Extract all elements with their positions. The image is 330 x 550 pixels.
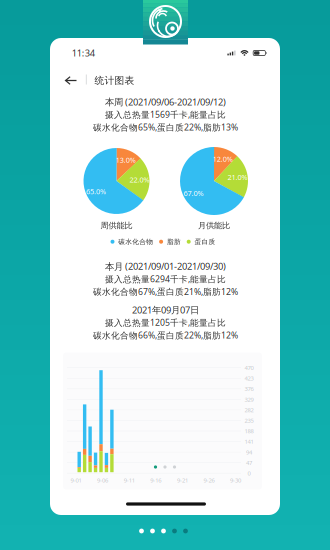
staticText: 摄入总热量1569千卡,能量占比 <box>105 109 226 120</box>
staticText: 9-21 <box>177 476 188 484</box>
staticText: 9-26 <box>203 476 214 484</box>
staticText: 蛋白质 <box>194 237 215 246</box>
staticText: 9-30 <box>230 476 241 484</box>
staticText: 141 <box>244 438 253 446</box>
staticText: 9-11 <box>124 476 135 484</box>
staticText: 11:34 <box>72 47 95 59</box>
staticText: 12.0% <box>213 154 233 164</box>
staticText: 0 <box>247 469 250 477</box>
staticText: 脂肪 <box>167 237 181 246</box>
staticText: 碳水化合物 <box>118 237 153 246</box>
staticText: 21.0% <box>227 172 247 182</box>
staticText: 329 <box>244 395 253 403</box>
staticText: 235 <box>244 416 253 424</box>
staticText: 65.0% <box>86 186 106 196</box>
staticText: 47 <box>246 459 252 467</box>
staticText: 282 <box>244 406 253 414</box>
staticText: 470 <box>244 364 253 372</box>
staticText: 22.0% <box>130 175 150 185</box>
staticText: 碳水化合物65%,蛋白质22%,脂肪13% <box>93 121 238 133</box>
staticText: 摄入总热量6294千卡,能量占比 <box>105 273 226 285</box>
staticText: 9-06 <box>97 476 108 484</box>
staticText: 碳水化合物66%,蛋白质22%,脂肪12% <box>93 329 238 341</box>
staticText: 月供能比 <box>198 220 230 231</box>
staticText: 9-16 <box>150 476 161 484</box>
staticText: 9-01 <box>70 476 81 484</box>
staticText: 2021年09月07日 <box>132 303 199 316</box>
staticText: 94 <box>246 448 252 456</box>
button[interactable]: Back <box>61 72 80 89</box>
staticText: 统计图表 <box>94 74 134 87</box>
staticText: 本月 (2021/09/01-2021/09/30) <box>105 260 226 272</box>
staticText: 13.0% <box>116 155 136 165</box>
staticText: 本周 (2021/09/06-2021/09/12) <box>105 95 226 108</box>
staticText: 188 <box>244 427 253 435</box>
staticText: 423 <box>244 374 253 382</box>
staticText: 摄入总热量1205千卡,能量占比 <box>105 317 226 328</box>
staticText: 376 <box>244 385 253 393</box>
staticText: 67.0% <box>183 188 203 198</box>
staticText: 周供能比 <box>100 220 132 231</box>
staticText: 碳水化合物67%,蛋白质21%,脂肪12% <box>93 286 238 297</box>
